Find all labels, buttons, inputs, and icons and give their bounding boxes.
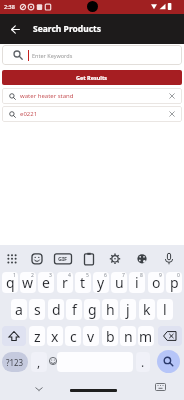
staticText: j [126,300,130,319]
button[interactable]: t [75,272,91,293]
button[interactable]: p [166,272,182,293]
staticText: z [34,327,41,346]
button[interactable]: Get Results [2,70,182,85]
staticText: v [87,327,95,346]
button[interactable]: v [83,326,99,346]
button[interactable]: q [2,272,18,293]
staticText: Search Products [33,23,102,35]
staticText: 5 [86,272,89,279]
staticText: Enter Keywords [32,52,73,59]
staticText: o [152,273,161,292]
staticText: . [141,354,145,370]
staticText: , [37,354,41,370]
button[interactable]: f [66,299,82,320]
staticText: e0221 [20,110,38,118]
staticText: f [72,300,77,319]
button[interactable]: b [102,326,118,346]
button[interactable]: h [102,299,118,320]
staticText: c [70,327,77,346]
button[interactable]: z [29,326,45,346]
staticText: 9 [159,272,162,279]
staticText: y [97,273,105,292]
staticText: e [42,273,50,292]
staticText: u [115,273,124,292]
button[interactable] [5,19,25,39]
staticText: b [106,327,115,346]
button[interactable]: o [148,272,164,293]
button[interactable]: x [47,326,63,346]
button[interactable]: s [29,299,45,320]
button[interactable] [158,326,182,346]
staticText: i [135,273,139,292]
button[interactable]: r [57,272,73,293]
staticText: water heater stand [20,92,74,100]
staticText: 4 [68,272,71,279]
staticText: 8 [140,272,143,279]
button[interactable]: e [38,272,54,293]
staticText: a [15,300,23,319]
button[interactable]: l [157,299,173,320]
button[interactable]: m [138,326,154,346]
button[interactable]: g [84,299,100,320]
button[interactable]: y [93,272,109,293]
staticText: p [170,273,179,292]
staticText: n [124,327,133,346]
button[interactable]: water heater stand [2,88,182,104]
staticText: GIF [58,255,68,262]
button[interactable] [2,326,26,346]
staticText: d [52,300,61,319]
staticText: 2 [31,272,34,279]
button[interactable]: w [20,272,36,293]
button[interactable]: k [139,299,155,320]
staticText: 2:38 [4,3,15,10]
button[interactable]: j [120,299,136,320]
staticText: 0 [177,272,180,279]
staticText: w [22,273,34,292]
staticText: s [34,300,41,319]
staticText: 3 [49,272,52,279]
button[interactable]: a [11,299,27,320]
button[interactable]: u [111,272,127,293]
staticText: 7 [122,272,125,279]
staticText: h [106,300,115,319]
staticText: t [80,273,86,292]
staticText: x [51,327,59,346]
button[interactable]: d [48,299,64,320]
button[interactable]: ?123 [2,352,28,372]
staticText: l [163,300,167,319]
button[interactable]: n [120,326,136,346]
button[interactable]: Enter Keywords [2,45,182,65]
button[interactable]: i [129,272,145,293]
button[interactable] [157,350,180,373]
staticText: r [62,273,68,292]
button[interactable]: c [65,326,81,346]
staticText: 6 [104,272,107,279]
staticText: k [143,300,151,319]
staticText: m [139,327,153,346]
button[interactable]: , [31,352,47,372]
staticText: q [6,273,15,292]
button[interactable]: . [136,352,150,372]
button[interactable]: e0221 [2,106,182,122]
staticText: 1 [13,272,16,279]
staticText: ?123 [6,357,24,368]
staticText: Get Results [76,74,108,81]
staticText: g [88,300,97,319]
